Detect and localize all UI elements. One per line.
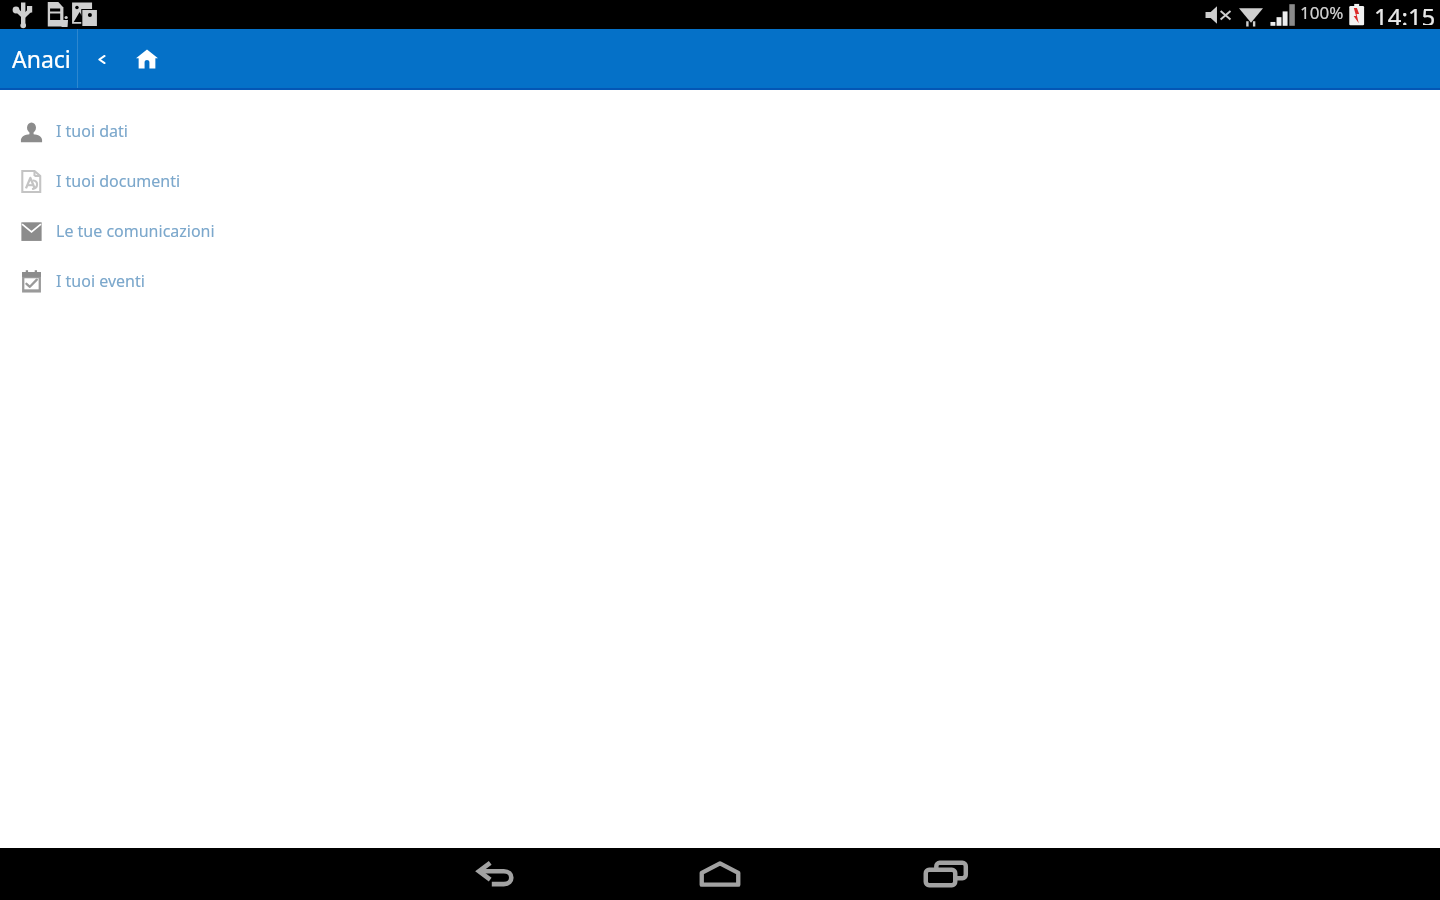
staticText: I tuoi dati — [56, 120, 128, 142]
staticText: I tuoi documenti — [56, 170, 181, 192]
staticText: 14:15 — [1374, 0, 1436, 25]
staticText: Le tue comunicazioni — [56, 220, 215, 242]
staticText: I tuoi eventi — [56, 270, 145, 292]
button[interactable]: I tuoi eventi — [0, 256, 1440, 306]
button[interactable]: Le tue comunicazioni — [0, 206, 1440, 256]
button[interactable]: I tuoi documenti — [0, 156, 1440, 206]
button[interactable]: Anaci — [0, 29, 77, 88]
staticText: 100% — [1300, 1, 1344, 24]
button[interactable]: Recent apps — [832, 848, 1059, 900]
button[interactable]: I tuoi dati — [0, 106, 1440, 156]
staticText: Anaci — [12, 43, 71, 74]
button[interactable]: Home — [607, 848, 832, 900]
button[interactable]: Back — [78, 29, 124, 88]
button[interactable]: Home — [124, 29, 170, 88]
button[interactable]: Back — [382, 848, 607, 900]
